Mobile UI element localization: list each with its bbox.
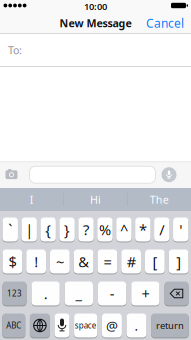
staticText: ` xyxy=(8,220,12,239)
button[interactable]: To: xyxy=(0,34,191,66)
staticText: To: xyxy=(8,43,22,57)
button[interactable]: _ xyxy=(65,281,93,305)
button[interactable] xyxy=(161,167,176,182)
staticText: / xyxy=(159,220,164,239)
staticText: & xyxy=(78,252,89,271)
staticText: _ xyxy=(75,284,82,303)
button[interactable] xyxy=(54,313,69,337)
button[interactable]: I xyxy=(0,188,64,211)
button[interactable]: ` xyxy=(2,217,18,241)
button[interactable]: & xyxy=(74,249,94,273)
button[interactable]: * xyxy=(135,217,151,241)
staticText: The xyxy=(150,192,169,207)
button[interactable]: The xyxy=(127,188,191,211)
staticText: } xyxy=(64,220,70,239)
button[interactable]: $ xyxy=(2,249,22,273)
button[interactable]: ] xyxy=(169,249,189,273)
button[interactable]: . xyxy=(31,281,60,305)
staticText: I xyxy=(30,192,34,207)
button[interactable]: Cancel xyxy=(146,14,191,30)
staticText: space xyxy=(75,320,97,331)
staticText: - xyxy=(110,284,115,303)
staticText: * xyxy=(139,220,147,239)
staticText: ABC xyxy=(6,320,21,331)
staticText: = xyxy=(103,252,111,271)
staticText: { xyxy=(45,220,51,239)
staticText: ' xyxy=(179,220,182,239)
button[interactable]: | xyxy=(21,217,37,241)
button[interactable]: + xyxy=(131,281,159,305)
button[interactable]: ~ xyxy=(50,249,70,273)
button[interactable] xyxy=(164,281,188,305)
staticText: % xyxy=(99,220,111,239)
staticText: . xyxy=(134,317,138,334)
staticText: return xyxy=(156,319,184,332)
staticText: ] xyxy=(176,252,181,271)
staticText: @ xyxy=(106,317,118,334)
button[interactable]: @ xyxy=(102,313,122,337)
button[interactable]: 123 xyxy=(2,281,26,305)
staticText: | xyxy=(25,220,33,239)
button[interactable]: ' xyxy=(173,217,188,241)
staticText: Hi xyxy=(90,192,101,207)
button[interactable]: # xyxy=(121,249,141,273)
staticText: . xyxy=(44,284,48,303)
staticText: $ xyxy=(8,252,16,271)
button[interactable]: [ xyxy=(145,249,165,273)
button[interactable]: ABC xyxy=(2,313,25,337)
staticText: ? xyxy=(83,220,89,239)
staticText: # xyxy=(127,252,136,271)
button[interactable]: - xyxy=(98,281,126,305)
staticText: ! xyxy=(34,252,38,271)
button[interactable]: ! xyxy=(26,249,46,273)
button[interactable] xyxy=(29,166,155,183)
staticText: 10:00 xyxy=(84,0,107,13)
button[interactable]: return xyxy=(151,313,189,337)
button[interactable]: } xyxy=(59,217,75,241)
button[interactable]: ? xyxy=(78,217,94,241)
button[interactable]: . xyxy=(126,313,146,337)
button[interactable]: = xyxy=(97,249,117,273)
staticText: ~ xyxy=(56,252,64,271)
staticText: [ xyxy=(152,252,157,271)
button[interactable] xyxy=(5,169,17,180)
staticText: 123 xyxy=(7,288,22,299)
staticText: + xyxy=(141,284,149,303)
button[interactable] xyxy=(30,313,50,337)
button[interactable]: Hi xyxy=(64,188,127,211)
staticText: Cancel xyxy=(146,15,184,31)
staticText: New Message xyxy=(59,16,131,30)
button[interactable]: space xyxy=(74,313,97,337)
button[interactable]: % xyxy=(97,217,113,241)
button[interactable]: ^ xyxy=(116,217,132,241)
button[interactable]: / xyxy=(154,217,169,241)
staticText: ^ xyxy=(120,220,128,239)
button[interactable]: { xyxy=(40,217,56,241)
